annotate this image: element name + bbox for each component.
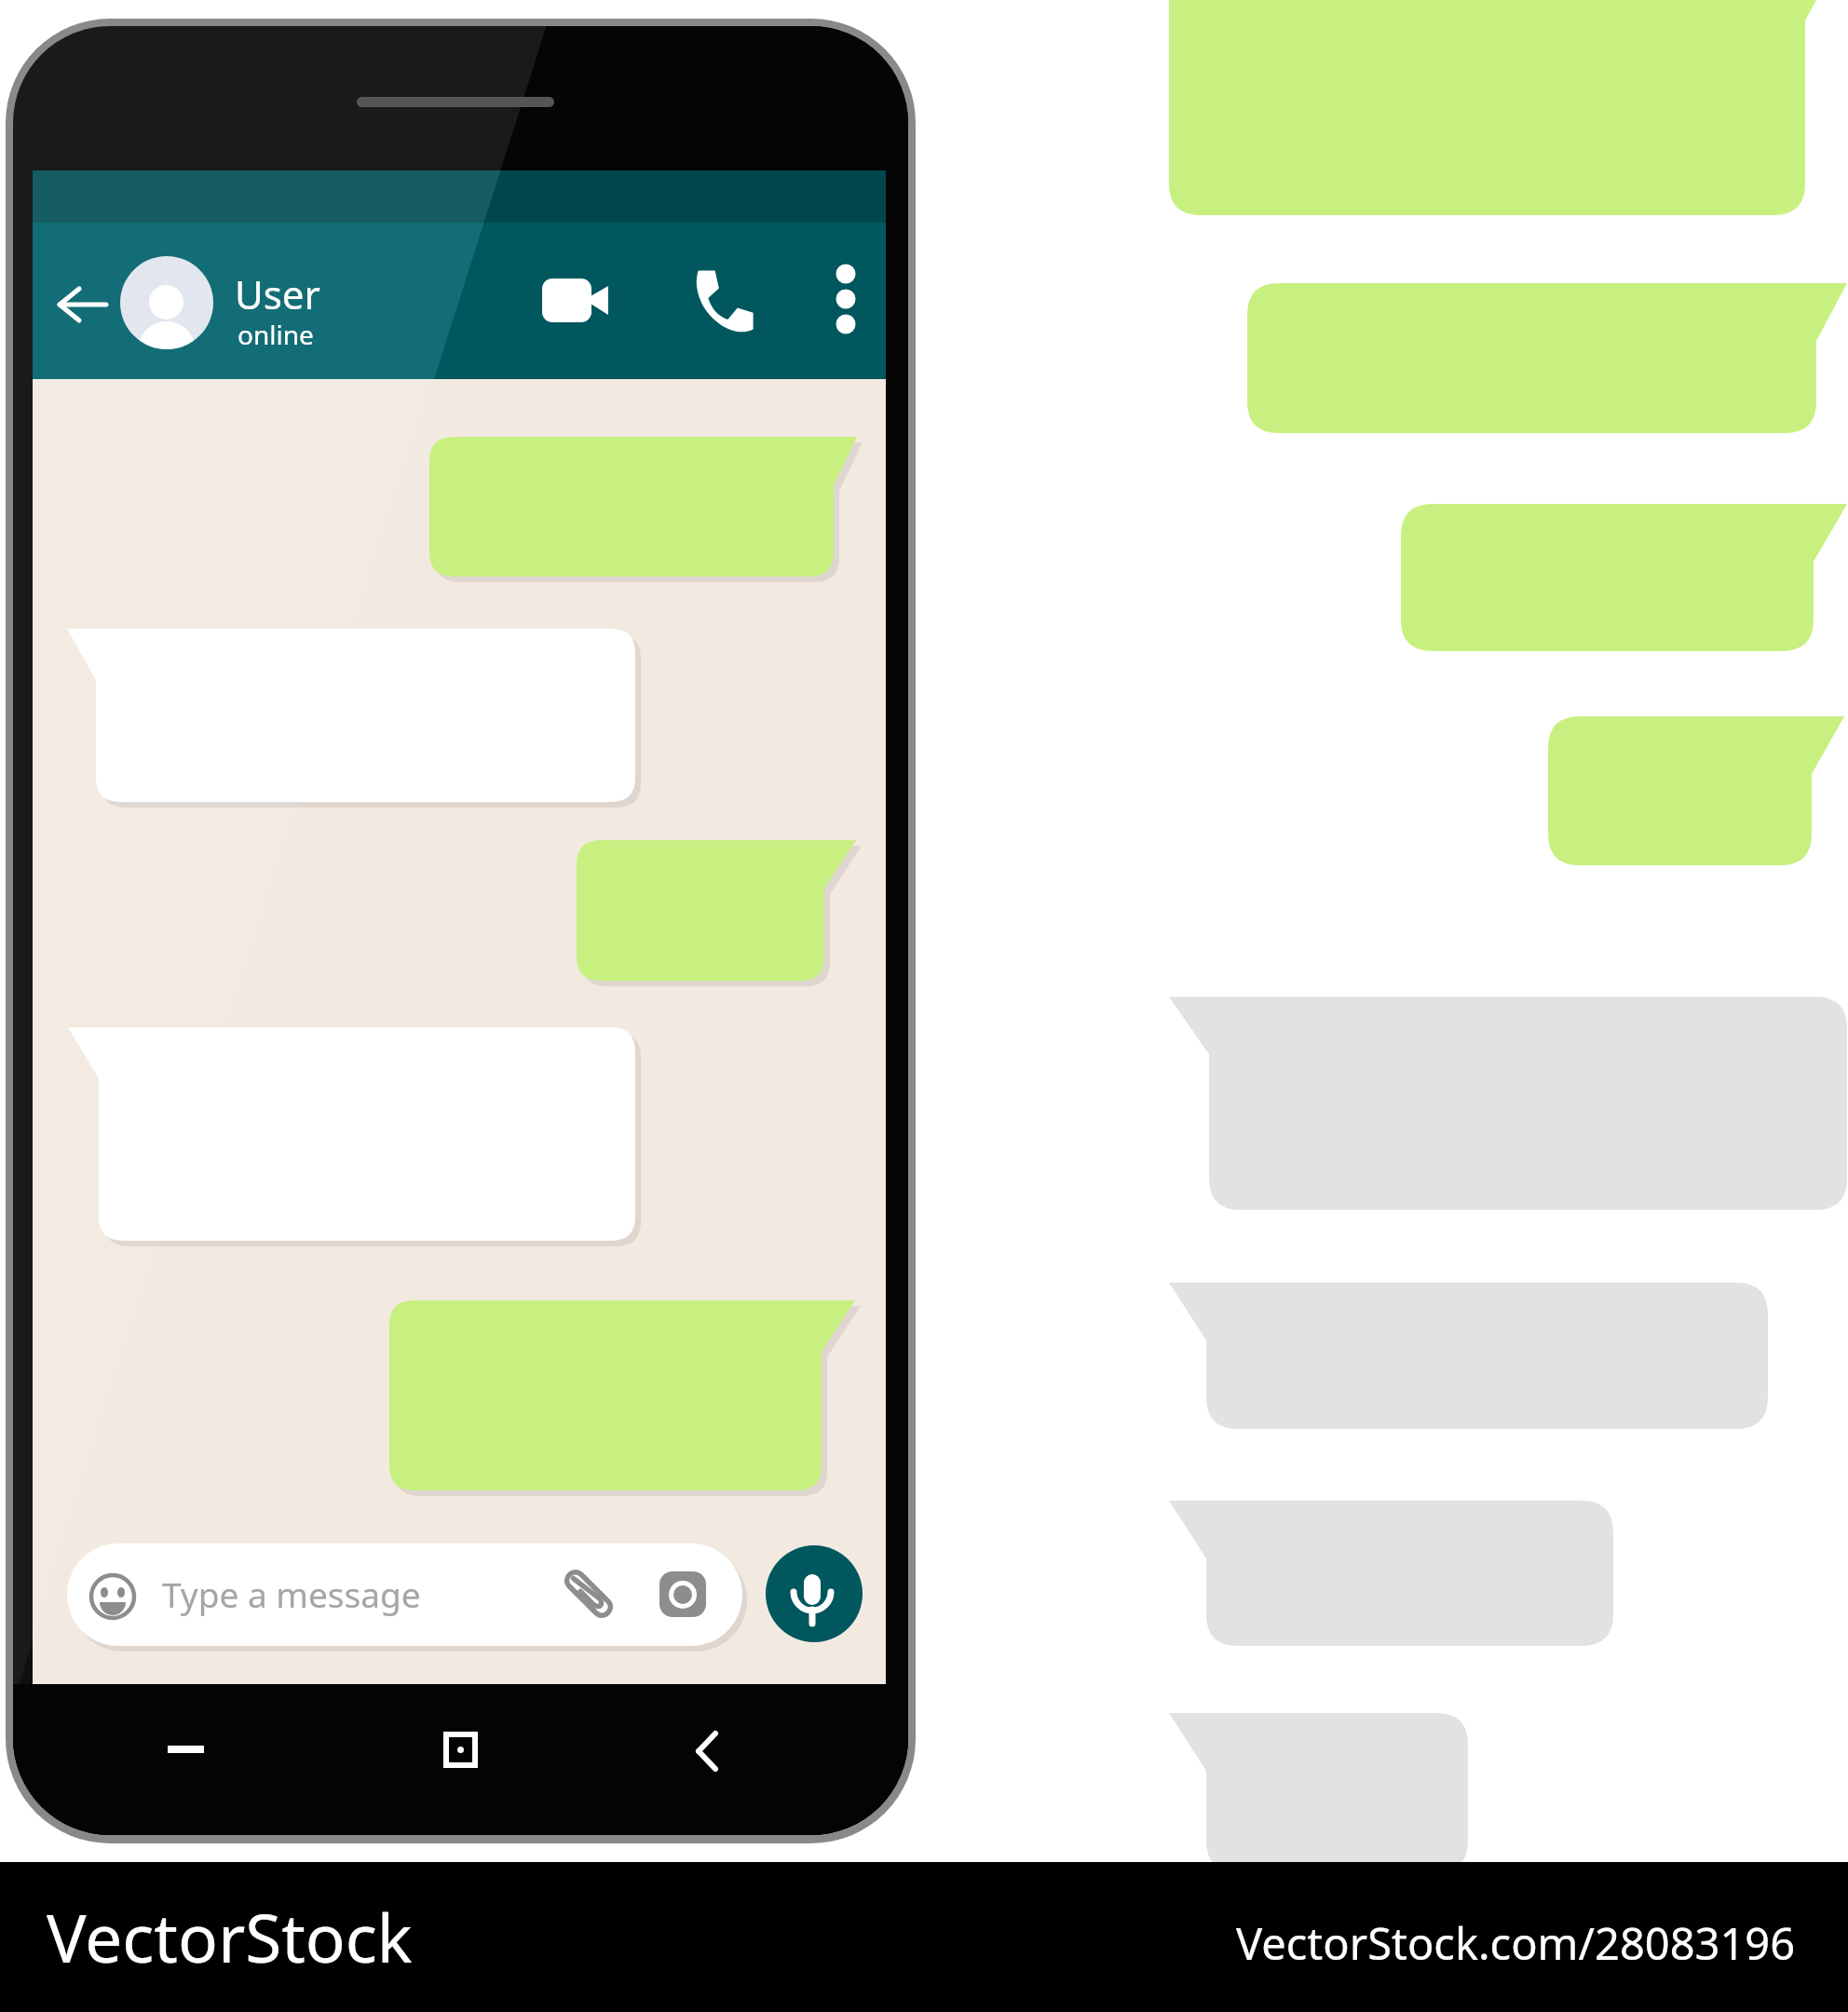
button[interactable]: User: [235, 267, 320, 320]
button[interactable]: Voice call: [686, 261, 769, 345]
button[interactable]: Recent apps: [140, 1719, 233, 1782]
button[interactable]: Home: [415, 1719, 509, 1782]
staticText: online: [238, 317, 314, 352]
staticText: VectorStock: [47, 1892, 413, 1982]
button[interactable]: Back: [51, 270, 115, 337]
button[interactable]: Type a message: [162, 1570, 421, 1617]
button[interactable]: Record voice message: [766, 1545, 863, 1642]
button[interactable]: More options: [810, 259, 883, 348]
button[interactable]: Back: [665, 1719, 758, 1782]
button[interactable]: online: [238, 317, 314, 352]
staticText: VectorStock.com/28083196: [1236, 1913, 1796, 1973]
button[interactable]: Video call: [531, 261, 615, 345]
staticText: User: [235, 267, 320, 320]
button[interactable]: Camera: [650, 1561, 717, 1628]
button[interactable]: Emoji: [79, 1561, 148, 1630]
button[interactable]: Attach file: [555, 1561, 624, 1630]
button[interactable]: Contact avatar: [118, 254, 215, 351]
staticText: Type a message: [162, 1570, 421, 1617]
